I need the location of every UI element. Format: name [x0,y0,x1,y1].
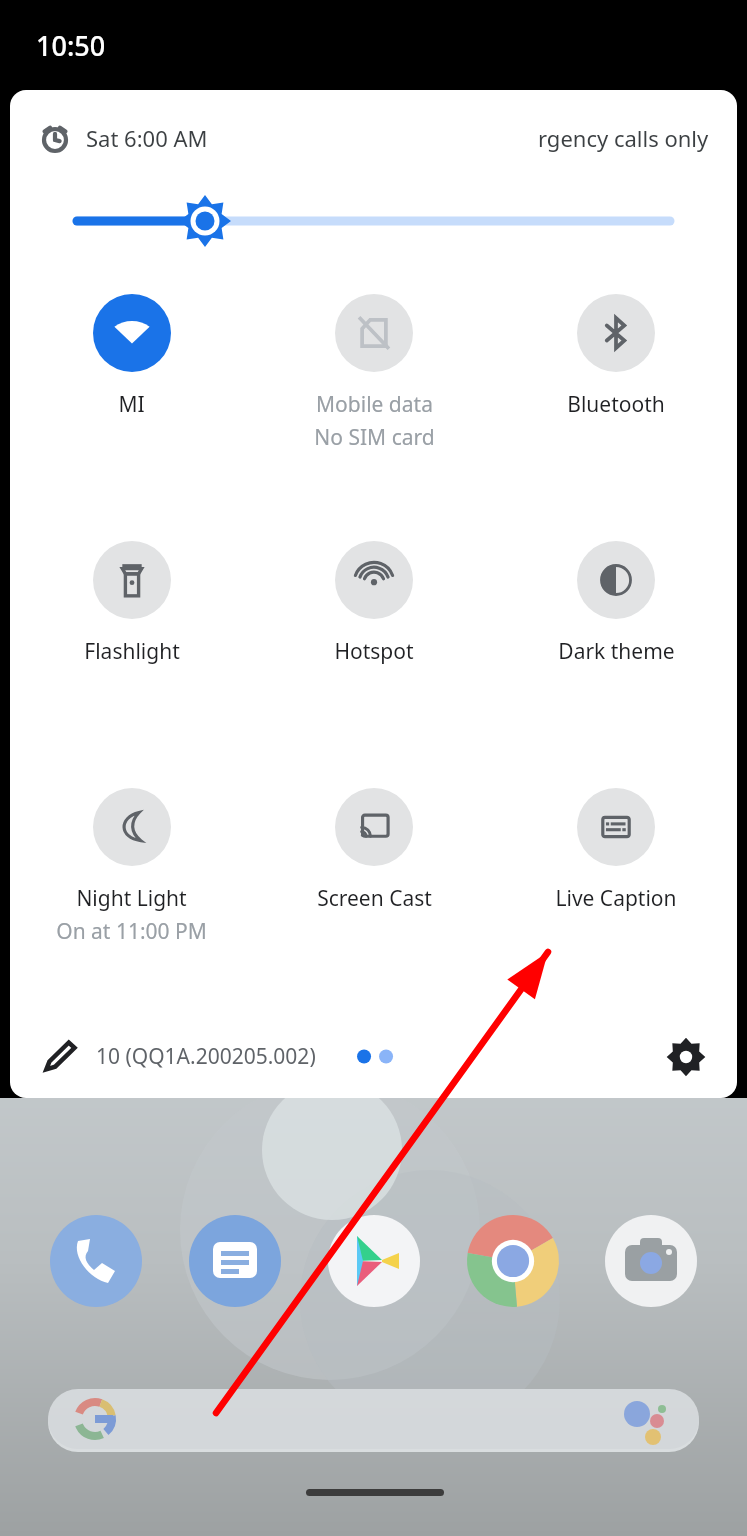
staticText: Live Caption [555,884,677,913]
staticText: Mobile data [316,390,433,419]
button[interactable]: Mobile data [253,274,495,521]
button[interactable]: Alarm [38,121,72,155]
button[interactable]: Settings [663,1034,709,1080]
staticText: Screen Cast [317,884,432,913]
button[interactable]: Brightness [10,186,737,256]
staticText: Flashlight [84,637,180,666]
staticText: MI [118,390,145,419]
button[interactable]: Screen Cast [253,768,495,1015]
staticText: Night Light [76,884,187,913]
staticText: 10 (QQ1A.200205.002) [96,1042,316,1071]
button[interactable]: MI [10,274,253,521]
button[interactable]: Bluetooth [495,274,737,521]
button[interactable]: Hotspot [253,521,495,768]
staticText: rgency calls only [538,123,709,153]
staticText: Sat 6:00 AM [86,123,208,153]
button[interactable]: Dark theme [495,521,737,768]
button[interactable]: Live Caption [495,768,737,1015]
staticText: 10:50 [36,27,106,64]
button[interactable]: Night Light [10,768,253,1015]
button[interactable]: Edit tiles [38,1035,82,1079]
button[interactable]: Flashlight [10,521,253,768]
staticText: Hotspot [334,637,414,666]
staticText: Dark theme [558,637,675,666]
staticText: On at 11:00 PM [56,917,207,946]
staticText: No SIM card [314,423,435,452]
staticText: Bluetooth [567,390,665,419]
